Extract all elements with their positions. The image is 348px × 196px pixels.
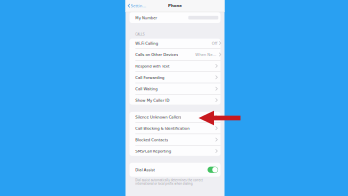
button[interactable]: Wi-Fi Calling — [129, 38, 220, 49]
button[interactable]: Silence Unknown Callers — [129, 111, 220, 122]
staticText: Dial Assist — [135, 168, 253, 194]
staticText: Respond with Text — [135, 64, 340, 90]
staticText: Dial assist automatically determines the… — [135, 179, 348, 196]
staticText: Show My Caller ID — [135, 98, 340, 125]
button[interactable]: Show My Caller ID — [129, 95, 220, 106]
button[interactable]: Call Blocking & Identification — [129, 123, 220, 134]
button[interactable]: Calls on Other Devices — [129, 49, 220, 60]
staticText: Silence Unknown Callers — [135, 115, 348, 141]
staticText: Calls on Other Devices — [135, 53, 348, 79]
button[interactable]: SMS/Call Reporting — [129, 145, 220, 156]
staticText: Call Forwarding — [135, 75, 309, 102]
staticText: Wi-Fi Calling — [135, 41, 271, 68]
button[interactable]: Dial Assist, on — [207, 167, 218, 173]
button[interactable]: Call Waiting — [129, 83, 220, 94]
staticText: Call Waiting — [135, 87, 268, 113]
staticText: international or local prefix when diali… — [135, 182, 348, 196]
button[interactable]: Respond with Text — [129, 60, 220, 71]
button[interactable]: Settings — [125, 4, 147, 8]
button[interactable]: Blocked Contacts — [129, 134, 220, 145]
staticText: My Number — [135, 16, 265, 42]
staticText: Settings — [131, 4, 227, 31]
staticText: SMS/Call Reporting — [135, 149, 348, 176]
staticText: CALLS — [135, 33, 190, 53]
button[interactable]: My Number — [129, 12, 220, 23]
staticText: Call Blocking & Identification — [135, 126, 348, 153]
button[interactable]: Call Forwarding — [129, 72, 220, 83]
staticText: When Nearby — [195, 53, 327, 79]
staticText: Blocked Contacts — [135, 138, 332, 164]
